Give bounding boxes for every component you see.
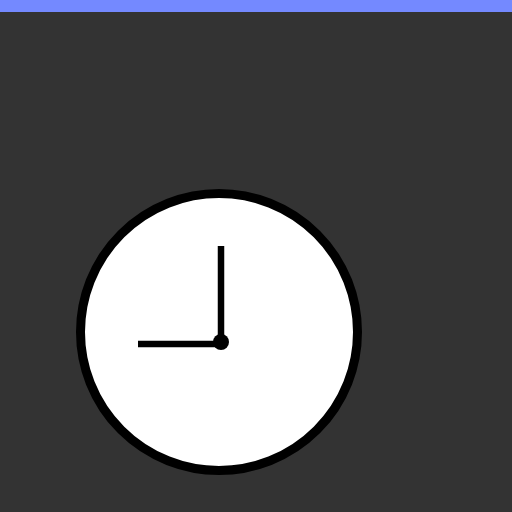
button[interactable]: Analog clock showing nine o'clock: [0, 12, 512, 512]
